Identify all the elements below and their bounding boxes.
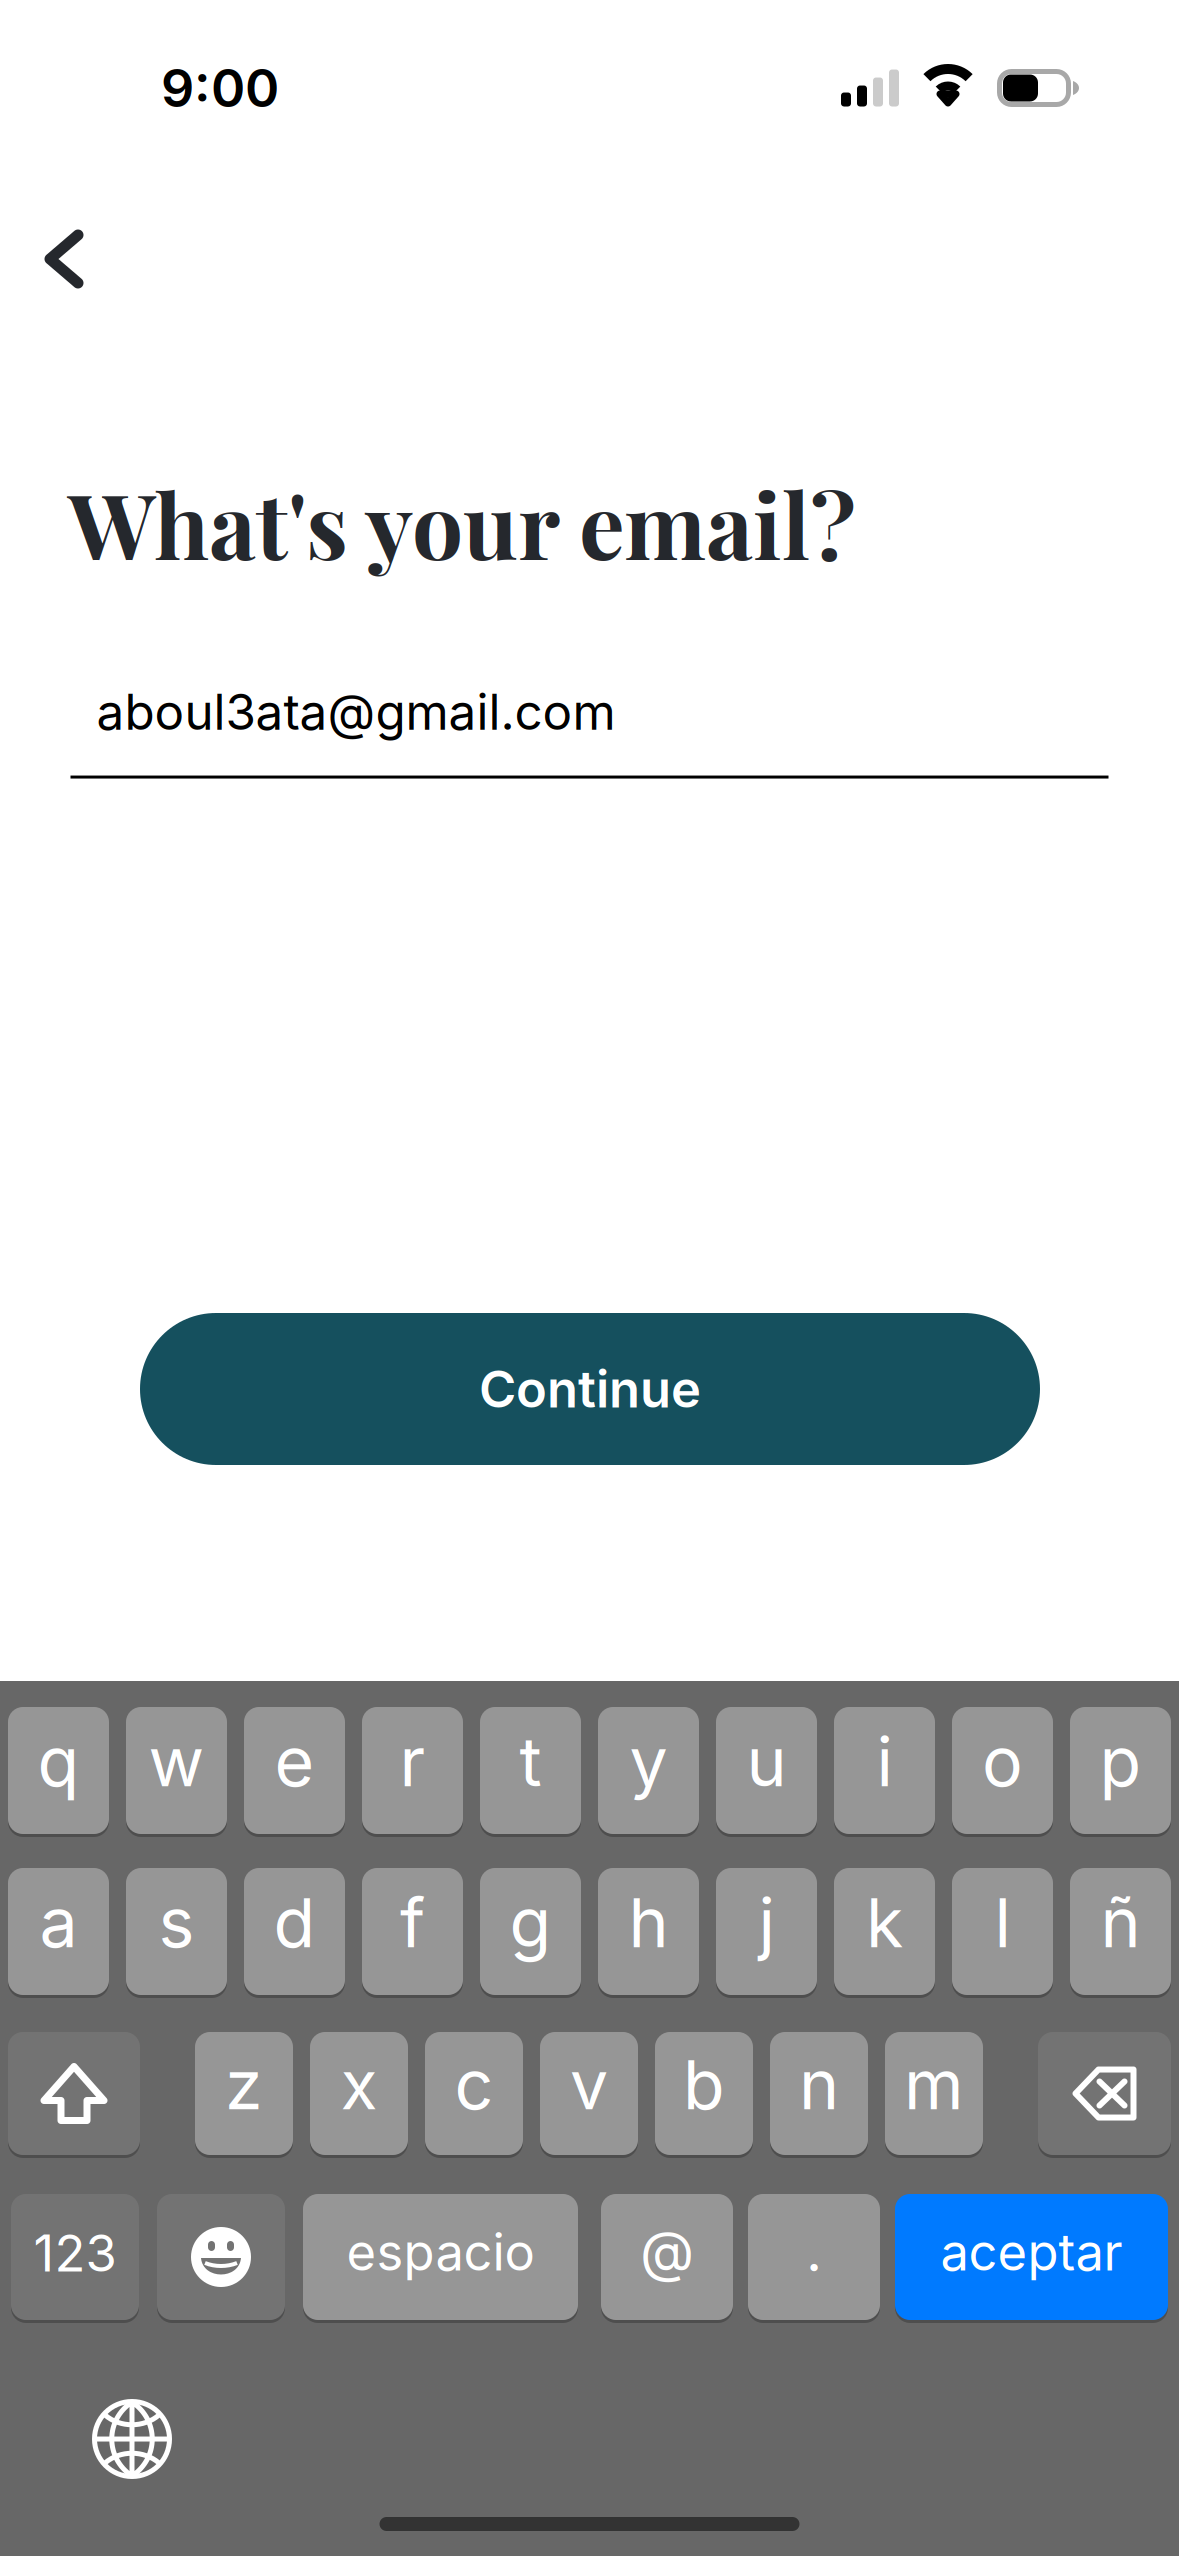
staticText: z [225, 2043, 263, 2126]
staticText: e [274, 1720, 314, 1803]
staticText: i [876, 1720, 892, 1803]
button[interactable]: r [362, 1707, 463, 1834]
button[interactable]: f [362, 1868, 463, 1995]
staticText: . [806, 2217, 822, 2285]
staticText: 9:00 [161, 56, 279, 119]
button[interactable]: @ [601, 2194, 733, 2320]
staticText: s [158, 1881, 194, 1964]
staticText: l [994, 1881, 1010, 1964]
button[interactable]: n [770, 2032, 868, 2155]
button[interactable]: y [598, 1707, 699, 1834]
staticText: What's your email? [68, 462, 856, 583]
button[interactable]: Next keyboard [92, 2399, 172, 2479]
staticText: @ [640, 2217, 694, 2285]
staticText: 123 [33, 2222, 116, 2284]
button[interactable]: Emoji [157, 2194, 285, 2320]
staticText: ñ [1100, 1881, 1140, 1964]
button[interactable]: Delete [1038, 2032, 1171, 2155]
button[interactable]: x [310, 2032, 408, 2155]
button[interactable]: 123 [11, 2194, 139, 2320]
button[interactable]: z [195, 2032, 293, 2155]
staticText: j [758, 1881, 774, 1964]
staticText: r [399, 1720, 425, 1803]
staticText: aceptar [940, 2221, 1122, 2283]
button[interactable]: espacio [303, 2194, 578, 2320]
button[interactable]: c [425, 2032, 523, 2155]
button[interactable]: aceptar [895, 2194, 1168, 2320]
button[interactable]: t [480, 1707, 581, 1834]
button[interactable]: l [952, 1868, 1053, 1995]
button[interactable]: o [952, 1707, 1053, 1834]
button[interactable]: Shift [8, 2032, 140, 2155]
staticText: f [400, 1881, 425, 1964]
button[interactable]: i [834, 1707, 935, 1834]
staticText: d [273, 1881, 315, 1964]
button[interactable]: a [8, 1868, 109, 1995]
staticText: Continue [479, 1358, 701, 1420]
button[interactable]: p [1070, 1707, 1171, 1834]
staticText: x [340, 2043, 377, 2126]
button[interactable]: Continue [140, 1313, 1040, 1465]
staticText: t [519, 1720, 541, 1803]
button[interactable]: j [716, 1868, 817, 1995]
button[interactable]: Back [23, 208, 105, 310]
button[interactable]: b [655, 2032, 753, 2155]
staticText: n [799, 2043, 839, 2126]
button[interactable]: u [716, 1707, 817, 1834]
staticText: o [982, 1720, 1023, 1803]
staticText: h [628, 1881, 668, 1964]
staticText: a [39, 1881, 77, 1964]
staticText: aboul3ata@gmail.com [96, 682, 615, 742]
button[interactable]: g [480, 1868, 581, 1995]
staticText: y [629, 1720, 667, 1803]
button[interactable]: d [244, 1868, 345, 1995]
button[interactable]: m [885, 2032, 983, 2155]
staticText: w [148, 1720, 204, 1803]
button[interactable]: q [8, 1707, 109, 1834]
button[interactable]: . [748, 2194, 880, 2320]
staticText: b [683, 2043, 725, 2126]
staticText: c [454, 2043, 493, 2126]
staticText: g [509, 1881, 551, 1964]
staticText: v [570, 2043, 608, 2126]
staticText: k [866, 1881, 903, 1964]
staticText: m [904, 2043, 964, 2126]
button[interactable]: k [834, 1868, 935, 1995]
staticText: p [1099, 1720, 1141, 1803]
button[interactable]: w [126, 1707, 227, 1834]
button[interactable]: h [598, 1868, 699, 1995]
button[interactable]: e [244, 1707, 345, 1834]
staticText: u [746, 1720, 786, 1803]
staticText: q [37, 1720, 79, 1803]
button[interactable]: ñ [1070, 1868, 1171, 1995]
staticText: espacio [346, 2221, 534, 2283]
button[interactable]: s [126, 1868, 227, 1995]
button[interactable]: v [540, 2032, 638, 2155]
